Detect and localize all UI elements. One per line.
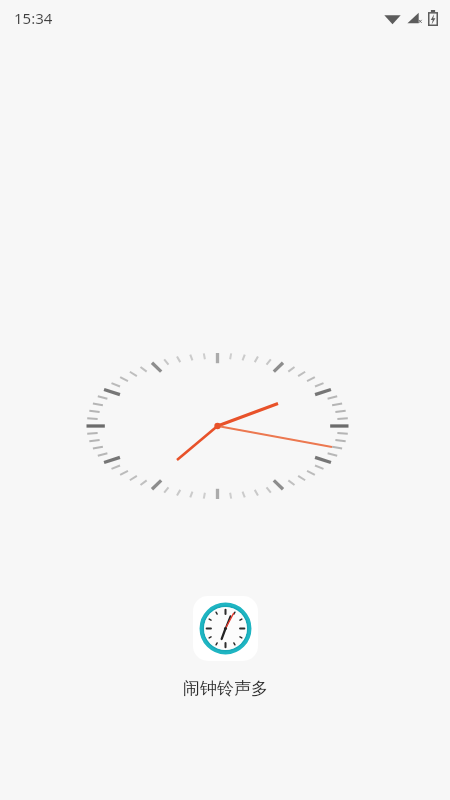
staticText: 闹钟铃声多 xyxy=(183,678,268,699)
staticText: 15:34 xyxy=(14,8,53,28)
other: Mobile signal xyxy=(407,11,422,25)
other: Wi-Fi xyxy=(384,11,401,25)
button[interactable]: 闹钟铃声多 xyxy=(159,596,292,699)
other: Battery charging xyxy=(428,10,438,26)
